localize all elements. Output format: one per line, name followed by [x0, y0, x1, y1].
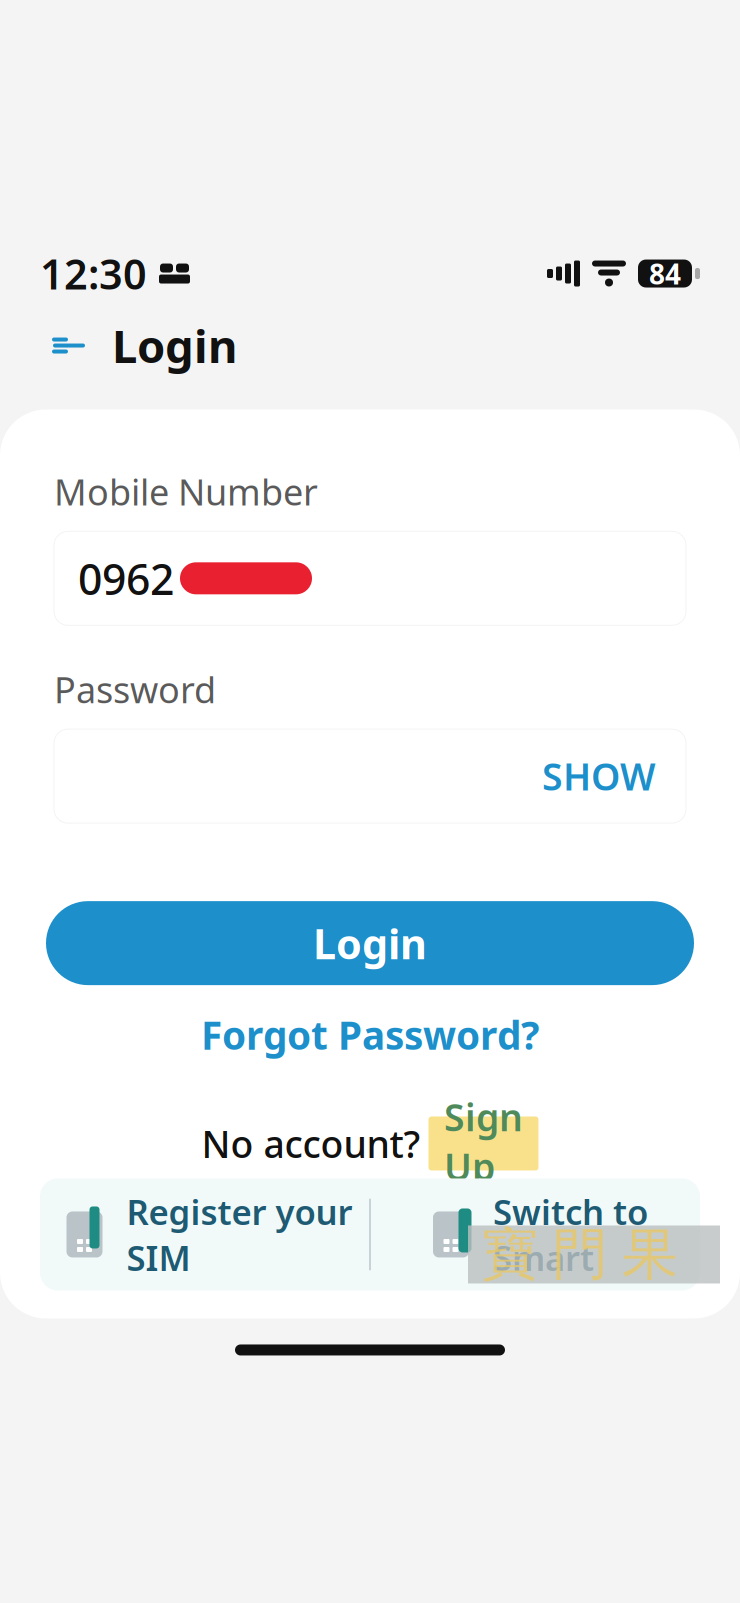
staticText: Sign Up	[444, 1092, 523, 1191]
staticText: 寶	[482, 1220, 538, 1289]
staticText: 果	[622, 1220, 678, 1289]
staticText: No account?	[201, 1119, 420, 1168]
staticText: 12:30	[40, 246, 147, 301]
button[interactable]: Sign Up	[428, 1116, 538, 1170]
staticText: Switch to Smart	[493, 1188, 648, 1280]
button[interactable]: Forgot Password?	[185, 999, 555, 1070]
button[interactable]: SHOW	[534, 739, 664, 813]
staticText: Register your SIM	[126, 1188, 352, 1280]
staticText: SHOW	[542, 751, 656, 801]
button[interactable]: Register your SIM	[40, 1178, 369, 1290]
button[interactable]: Back	[40, 316, 98, 374]
button[interactable]: Switch to Smart	[371, 1178, 700, 1290]
staticText: Password	[54, 665, 216, 713]
button[interactable]: Login	[46, 901, 694, 985]
staticText: 84	[649, 255, 681, 292]
staticText: 門	[552, 1220, 608, 1289]
staticText: Mobile Number	[54, 467, 318, 515]
staticText: Login	[112, 315, 237, 376]
staticText: 0962	[78, 550, 174, 607]
staticText: Forgot Password?	[201, 1009, 539, 1060]
staticText: Login	[313, 916, 427, 971]
